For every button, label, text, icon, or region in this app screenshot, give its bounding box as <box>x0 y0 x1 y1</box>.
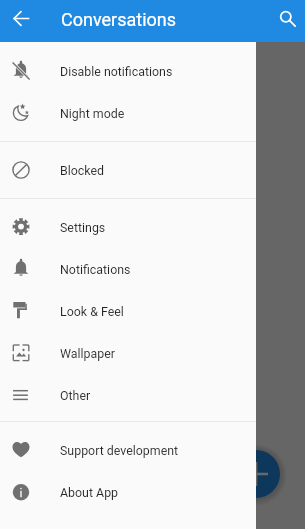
button[interactable]: About App <box>0 471 256 513</box>
button[interactable]: New conversation <box>232 450 280 498</box>
staticText: Notifications <box>60 262 131 277</box>
staticText: Disable notifications <box>60 64 173 79</box>
staticText: Wallpaper <box>60 346 115 361</box>
button[interactable]: Notifications <box>0 248 256 290</box>
staticText: Settings <box>60 220 106 235</box>
staticText: Night mode <box>60 106 125 121</box>
button[interactable]: Wallpaper <box>0 332 256 374</box>
staticText: Other <box>60 388 91 403</box>
button[interactable]: Look & Feel <box>0 290 256 332</box>
button[interactable]: Support development <box>0 429 256 471</box>
staticText: Support development <box>60 443 179 458</box>
staticText: About App <box>60 485 119 500</box>
button[interactable]: Night mode <box>0 92 256 134</box>
button[interactable]: Other <box>0 374 256 416</box>
button[interactable]: Disable notifications <box>0 50 256 92</box>
button[interactable]: Settings <box>0 206 256 248</box>
button[interactable]: Blocked <box>0 149 256 191</box>
button[interactable]: Back <box>7 4 35 32</box>
staticText: Look & Feel <box>60 304 124 319</box>
staticText: Blocked <box>60 163 105 178</box>
staticText: Conversations <box>61 9 177 30</box>
button[interactable]: Search <box>274 5 300 31</box>
